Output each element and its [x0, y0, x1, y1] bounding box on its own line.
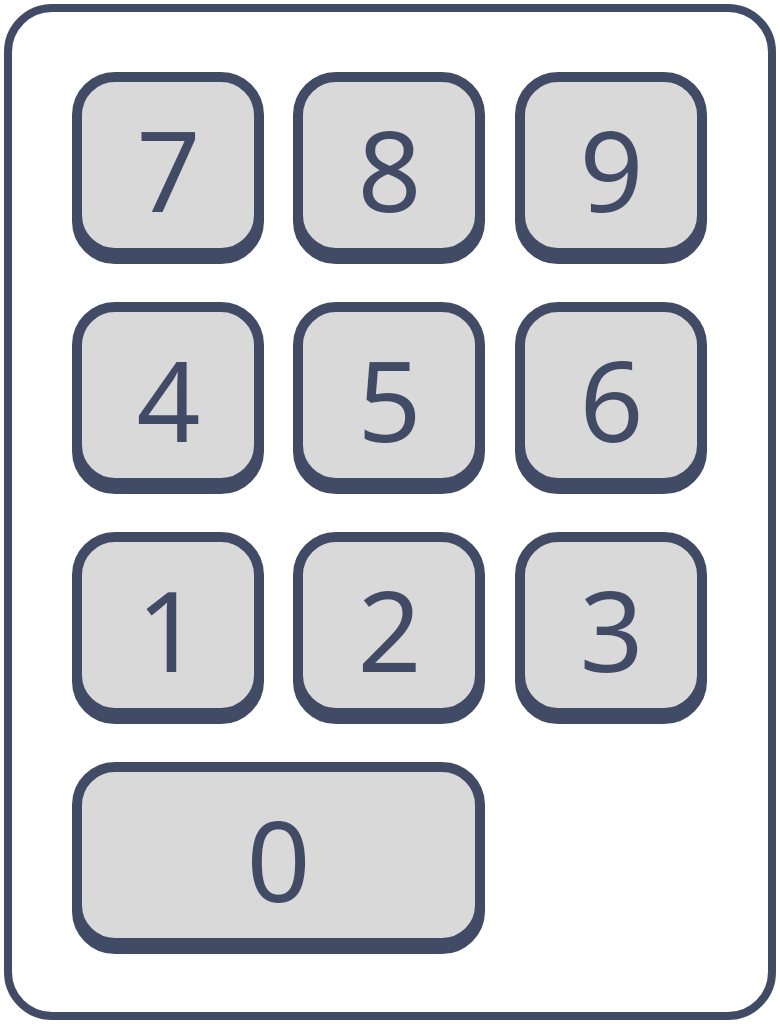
button[interactable]: Digit 8 [293, 72, 485, 264]
staticText: 6 [579, 322, 644, 475]
staticText: 4 [136, 322, 201, 475]
staticText: 8 [357, 92, 422, 245]
button[interactable]: Digit 3 [515, 532, 707, 724]
button[interactable]: Digit 1 [72, 532, 264, 724]
staticText: 0 [246, 782, 311, 935]
button[interactable]: Digit 7 [72, 72, 264, 264]
button[interactable]: Digit 4 [72, 302, 264, 494]
staticText: 2 [357, 552, 422, 705]
button[interactable]: Digit 2 [293, 532, 485, 724]
staticText: 3 [579, 552, 644, 705]
staticText: 7 [136, 92, 201, 245]
button[interactable]: Digit 0 [72, 762, 485, 954]
staticText: 1 [136, 552, 201, 705]
staticText: 5 [357, 322, 422, 475]
button[interactable]: Digit 5 [293, 302, 485, 494]
button[interactable]: Digit 9 [515, 72, 707, 264]
staticText: 9 [579, 92, 644, 245]
button[interactable]: Digit 6 [515, 302, 707, 494]
